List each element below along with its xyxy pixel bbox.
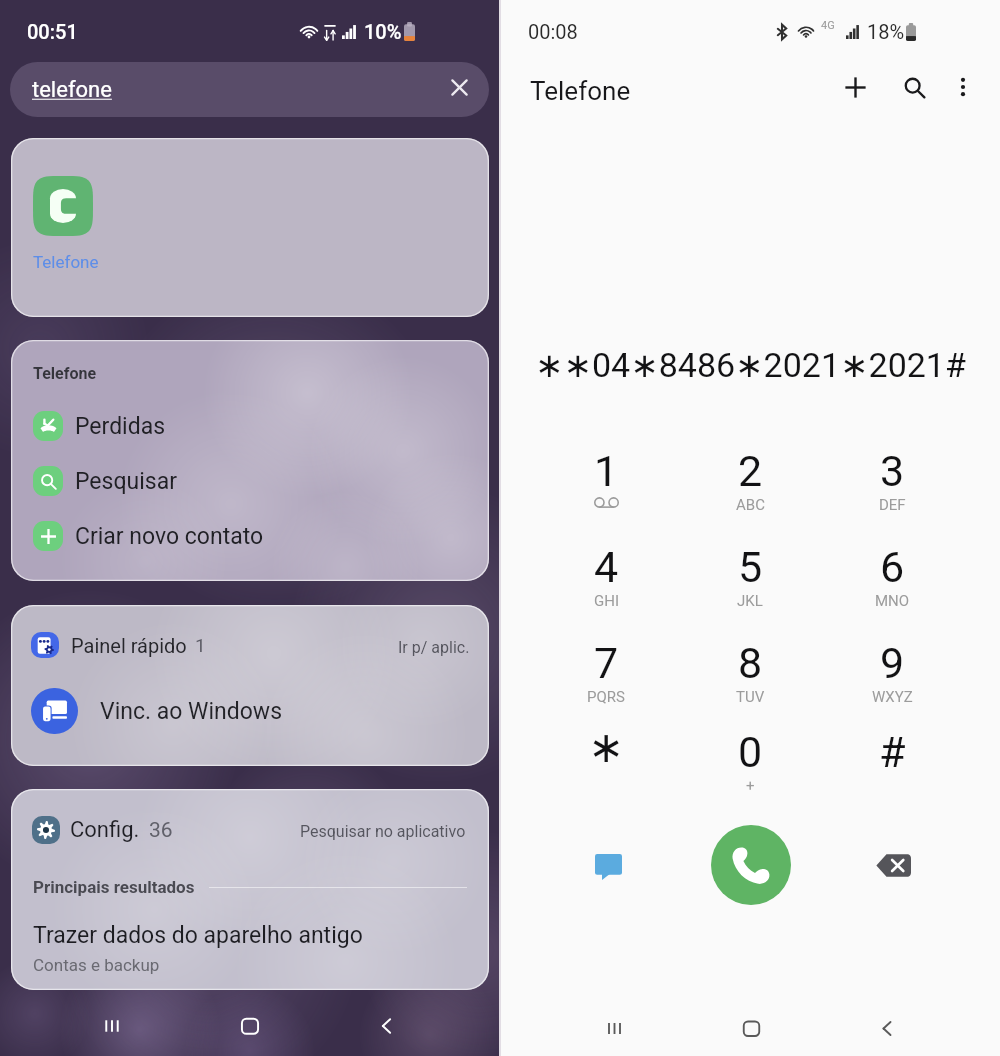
staticText: WXYZ [872, 688, 913, 706]
button[interactable]: # [844, 727, 940, 809]
staticText: # [879, 727, 906, 777]
staticText: ∗ [588, 722, 625, 772]
button[interactable]: Backspace [869, 841, 917, 889]
button[interactable]: ∗ [558, 722, 654, 804]
staticText: 9 [880, 638, 905, 688]
staticText: ABC [736, 496, 765, 514]
staticText: GHI [594, 592, 619, 610]
button[interactable]: Pesquisar [33, 466, 177, 496]
staticText: 1 [195, 634, 206, 656]
button[interactable]: 8 [702, 638, 798, 720]
staticText: TUV [736, 688, 765, 706]
staticText: PQRS [587, 688, 625, 706]
button[interactable]: Criar novo contato [33, 521, 264, 551]
button[interactable]: Clear [441, 69, 477, 105]
staticText: 0 [738, 727, 763, 777]
button[interactable]: Home [225, 1001, 275, 1051]
staticText: MNO [875, 592, 910, 610]
button[interactable]: 7 [558, 638, 654, 720]
button[interactable]: Telefone [11, 138, 489, 317]
staticText: Vinc. ao Windows [100, 698, 283, 725]
staticText: Criar novo contato [75, 523, 264, 550]
staticText: 4 [594, 542, 619, 592]
button[interactable]: More options [941, 65, 985, 109]
button[interactable]: Back [863, 1004, 911, 1052]
button[interactable]: Home [727, 1004, 775, 1052]
button[interactable]: Back [362, 1001, 412, 1051]
button[interactable]: Add [832, 64, 878, 110]
staticText: + [746, 777, 755, 795]
button[interactable]: Recents [87, 1001, 137, 1051]
staticText: 4G [821, 19, 835, 32]
button[interactable]: Search [891, 64, 937, 110]
staticText: telefone [32, 77, 112, 103]
button[interactable]: 0 [702, 727, 798, 809]
staticText: Config. [70, 817, 140, 843]
button[interactable]: 5 [702, 542, 798, 624]
staticText: Pesquisar no aplicativo [300, 822, 466, 841]
staticText: Telefone [33, 364, 97, 383]
button[interactable]: Call [711, 825, 791, 905]
staticText: Contas e backup [33, 955, 160, 975]
staticText: Painel rápido [71, 634, 187, 657]
staticText: Trazer dados do aparelho antigo [33, 922, 363, 949]
staticText: Principais resultados [33, 877, 195, 897]
staticText: 00:08 [528, 20, 578, 43]
staticText: 8 [738, 638, 763, 688]
staticText: 10% [364, 20, 402, 43]
staticText: 1 [594, 446, 619, 496]
button[interactable]: 4 [558, 542, 654, 624]
button[interactable]: 6 [844, 542, 940, 624]
button[interactable]: 2 [702, 446, 798, 528]
button[interactable]: Trazer dados do aparelho antigo [33, 922, 363, 975]
staticText: Telefone [33, 252, 99, 272]
button[interactable]: 3 [844, 446, 940, 528]
staticText: Perdidas [75, 413, 166, 440]
staticText: Ir p/ aplic. [398, 638, 470, 657]
staticText: 2 [738, 446, 763, 496]
button[interactable]: Painel rápido [31, 632, 206, 658]
staticText: ∗∗04∗8486∗2021∗2021# [535, 345, 966, 385]
button[interactable]: 1 [558, 446, 654, 528]
button[interactable]: Message [584, 843, 632, 891]
staticText: 00:51 [27, 20, 78, 43]
button[interactable]: Recents [590, 1004, 638, 1052]
staticText: JKL [737, 592, 763, 610]
button[interactable]: telefone [10, 62, 489, 117]
staticText: Pesquisar [75, 468, 177, 495]
button[interactable]: Perdidas [33, 411, 166, 441]
staticText: 5 [738, 542, 763, 592]
staticText: DEF [879, 496, 906, 514]
staticText: 18% [867, 20, 905, 43]
staticText: 36 [149, 818, 173, 843]
staticText: 3 [880, 446, 905, 496]
staticText: Telefone [530, 76, 631, 106]
button[interactable]: Vinc. ao Windows [31, 688, 283, 734]
button[interactable]: 9 [844, 638, 940, 720]
button[interactable]: Config. [32, 816, 173, 844]
staticText: 7 [594, 638, 619, 688]
staticText: 6 [880, 542, 905, 592]
